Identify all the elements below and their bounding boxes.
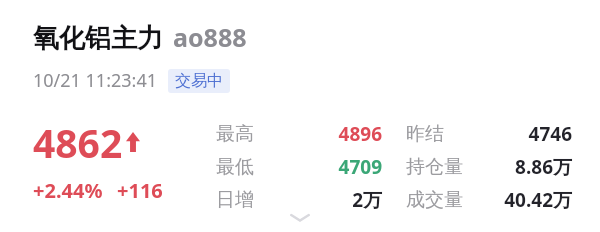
staticText: 4709 [338, 154, 382, 180]
staticText: 4746 [528, 121, 572, 147]
button[interactable]: 日增 [216, 183, 382, 216]
staticText: 40.42万 [504, 187, 572, 213]
staticText: 8.86万 [515, 154, 572, 180]
staticText: 2万 [352, 187, 382, 213]
button[interactable]: 交易中 [168, 69, 230, 93]
staticText: +2.44% [33, 177, 103, 204]
button[interactable]: 最低 [216, 150, 382, 183]
staticText: 氧化铝主力 [33, 22, 163, 55]
button[interactable]: 成交量 [406, 183, 572, 216]
staticText: 10/21 11:23:41 [33, 68, 157, 93]
button[interactable]: 昨结 [406, 117, 572, 150]
staticText: 昨结 [406, 122, 444, 146]
staticText: 日增 [216, 188, 254, 212]
staticText: 最低 [216, 155, 254, 179]
button[interactable]: 最高 [216, 117, 382, 150]
staticText: 最高 [216, 122, 254, 146]
staticText: ao888 [173, 20, 247, 54]
staticText: +116 [117, 177, 163, 204]
staticText: 持仓量 [406, 155, 463, 179]
button[interactable]: Expand [278, 206, 322, 228]
staticText: 交易中 [175, 71, 223, 91]
staticText: 4862 [33, 116, 123, 169]
staticText: 成交量 [406, 188, 463, 212]
button[interactable]: 持仓量 [406, 150, 572, 183]
staticText: 4896 [338, 121, 382, 147]
